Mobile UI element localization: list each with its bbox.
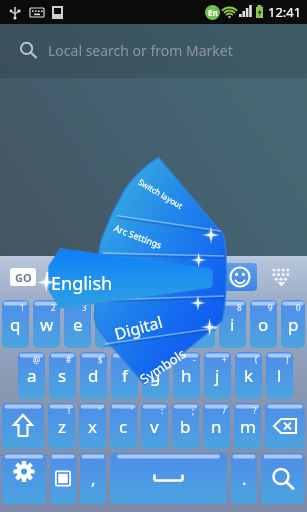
staticText: 3 [82,302,87,313]
staticText: 8 [237,302,242,313]
staticText: , [91,467,96,490]
button[interactable]: GO [10,268,36,286]
staticText: + [222,354,227,365]
button[interactable]: k [235,352,262,399]
staticText: e [73,313,83,336]
button[interactable]: Arc menu [0,0,307,512]
staticText: c [119,415,128,438]
button[interactable]: e [64,300,91,348]
button[interactable]: y [157,300,184,348]
staticText: z [58,415,66,438]
button[interactable]: u [188,300,215,348]
staticText: l [277,364,282,387]
staticText: GO [15,270,32,285]
staticText: d [88,364,99,387]
staticText: b [180,415,191,438]
button[interactable]: Settings and numbers [2,453,46,504]
staticText: y [166,313,175,336]
button[interactable]: r [95,300,122,348]
staticText: ' [131,405,133,416]
staticText: / [223,405,226,416]
button[interactable]: n [203,403,230,449]
button[interactable]: . [231,453,257,504]
staticText: u [196,313,207,336]
staticText: Digital [112,311,165,345]
staticText: En [208,7,218,18]
button[interactable]: g [142,352,169,399]
staticText: Local search or from Market [48,41,233,60]
staticText: $ [98,354,103,365]
staticText: Symbols [136,344,190,388]
staticText: ? [253,405,257,416]
button[interactable]: Backspace [265,403,305,449]
button[interactable]: Emoji [223,263,257,291]
button[interactable]: w [33,300,60,348]
staticText: Switch layout [136,176,185,211]
button[interactable]: x [79,403,106,449]
button[interactable]: c [110,403,137,449]
staticText: Arc Settings [112,221,164,251]
staticText: : [161,405,164,416]
button[interactable]: f [111,352,138,399]
button[interactable]: Local search or from Market [0,24,307,78]
button[interactable]: a [18,352,45,399]
button[interactable]: Input language [50,453,76,504]
staticText: q [10,313,21,336]
staticText: m [240,415,256,438]
button[interactable]: Space [110,453,227,504]
staticText: o [258,313,269,336]
staticText: h [181,364,192,387]
staticText: g [150,364,161,387]
staticText: @ [33,354,41,365]
staticText: p [288,313,299,336]
staticText: ( [255,354,258,365]
staticText: English [51,271,113,296]
button[interactable]: h [173,352,200,399]
button[interactable]: v [141,403,168,449]
staticText: " [98,405,102,416]
staticText: % [127,354,134,365]
staticText: # [66,354,72,365]
button[interactable]: l [266,352,293,399]
staticText: 0 [296,302,301,313]
staticText: k [244,364,254,387]
staticText: i [230,313,235,336]
staticText: f [122,364,128,387]
staticText: t [136,313,143,336]
button[interactable]: o [250,300,277,348]
staticText: n [211,415,222,438]
staticText: 9 [268,302,273,313]
button[interactable]: z [48,403,75,449]
button[interactable]: s [49,352,76,399]
staticText: - [193,354,196,365]
staticText: ; [192,405,195,416]
button[interactable]: Apps [267,262,297,292]
button[interactable]: p [281,300,305,348]
button[interactable]: m [234,403,261,449]
staticText: ! [68,405,71,416]
staticText: x [88,415,97,438]
button[interactable]: i [219,300,246,348]
button[interactable]: d [80,352,107,399]
staticText: 12:41 [268,3,302,21]
button[interactable]: q [2,300,29,348]
button[interactable]: Search [261,453,305,504]
button[interactable]: b [172,403,199,449]
staticText: s [58,364,67,387]
button[interactable]: , [80,453,106,504]
button[interactable]: Shift [2,403,44,449]
staticText: 1 [20,302,25,313]
button[interactable]: t [126,300,153,348]
staticText: v [150,415,159,438]
staticText: ) [286,354,289,365]
staticText: & [159,354,165,365]
button[interactable]: j [204,352,231,399]
staticText: . [242,467,247,490]
staticText: j [215,364,220,387]
staticText: w [40,313,54,336]
